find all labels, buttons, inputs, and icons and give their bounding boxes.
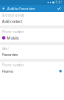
staticText: 9:41 bbox=[55, 1, 62, 4]
staticText: Mobile bbox=[7, 35, 19, 40]
staticText: Favorites bbox=[2, 52, 18, 57]
staticText: Selected contact bbox=[2, 14, 24, 17]
staticText: Label bbox=[2, 47, 9, 50]
staticText: Phone number bbox=[2, 30, 24, 34]
staticText: Add contact bbox=[2, 18, 22, 24]
staticText: Home bbox=[2, 68, 13, 74]
staticText: Phone number bbox=[2, 64, 24, 67]
button[interactable]: Back bbox=[0, 5, 7, 12]
staticText: Add to Favorites bbox=[7, 6, 35, 11]
button[interactable]: Save bbox=[55, 5, 62, 12]
